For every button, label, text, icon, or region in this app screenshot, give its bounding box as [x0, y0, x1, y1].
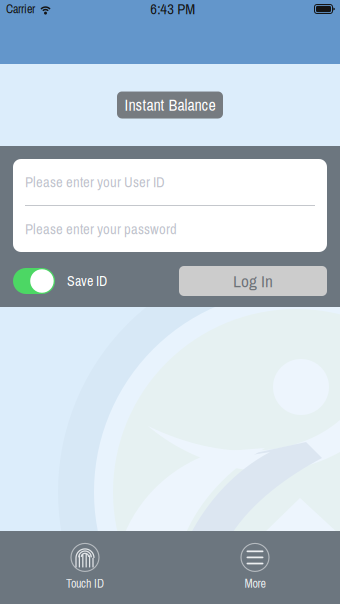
staticText: Please enter your password [25, 219, 177, 239]
button[interactable]: More [215, 543, 295, 592]
staticText: Please enter your User ID [25, 172, 165, 192]
button[interactable]: Log In [179, 266, 327, 296]
button[interactable]: Save ID [13, 268, 107, 294]
staticText: Instant Balance [124, 94, 215, 116]
staticText: 6:43 PM [150, 0, 195, 19]
staticText: Touch ID [66, 575, 104, 592]
staticText: More [244, 575, 265, 592]
staticText: Log In [233, 269, 273, 293]
button[interactable]: Touch ID [45, 543, 125, 592]
button[interactable]: Instant Balance [117, 91, 223, 118]
staticText: Save ID [67, 272, 107, 290]
staticText: Carrier [6, 1, 35, 17]
